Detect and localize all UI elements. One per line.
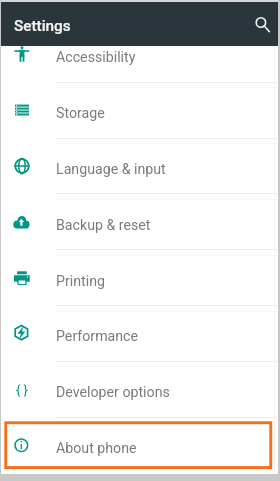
staticText: Developer options	[56, 384, 170, 401]
staticText: Backup & reset	[56, 217, 151, 234]
button[interactable]: Storage	[0, 84, 280, 140]
staticText: Language & input	[56, 161, 166, 178]
button[interactable]: { }	[0, 363, 280, 419]
button[interactable]: Search	[249, 11, 277, 39]
button[interactable]: Language & input	[0, 140, 280, 196]
button[interactable]: Backup & reset	[0, 196, 280, 252]
staticText: Printing	[56, 273, 105, 290]
button[interactable]: Accessibility	[0, 28, 280, 84]
staticText: Storage	[56, 105, 105, 122]
staticText: { }	[16, 382, 29, 397]
staticText: Performance	[56, 328, 139, 345]
staticText: Accessibility	[56, 49, 136, 66]
staticText: About phone	[56, 440, 137, 457]
button[interactable]: About phone	[0, 419, 280, 475]
button[interactable]: Printing	[0, 252, 280, 308]
staticText: Settings	[14, 17, 71, 35]
button[interactable]: Performance	[0, 307, 280, 363]
